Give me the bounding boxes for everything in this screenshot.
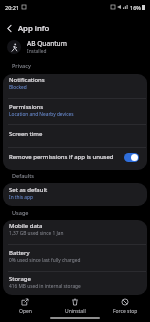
button[interactable]: Storage	[3, 272, 147, 295]
staticText: 16%	[130, 4, 141, 11]
staticText: AB Quantum	[27, 39, 67, 48]
staticText: Mobile data	[9, 222, 43, 230]
staticText: Remove permissions if app is unused	[9, 153, 114, 161]
staticText: 1,37 GB used since 1 Jan	[9, 230, 64, 237]
button[interactable]: Back	[2, 21, 16, 35]
button[interactable]: Set as default	[3, 183, 147, 206]
staticText: Battery	[9, 249, 30, 257]
staticText: Usage	[12, 209, 29, 216]
staticText: 416 MB used in internal storage	[9, 283, 81, 290]
staticText: App info	[18, 23, 50, 34]
staticText: Force stop	[113, 308, 138, 315]
staticText: Installed	[27, 48, 47, 55]
staticText: Screen time	[9, 130, 43, 138]
staticText: Storage	[9, 275, 31, 283]
staticText: 0% used since last fully charged	[9, 257, 81, 264]
staticText: Notifications	[9, 76, 45, 84]
staticText: Location and Nearby devices	[9, 111, 74, 118]
button[interactable]: Permissions	[3, 99, 147, 124]
button[interactable]: Mobile data	[3, 220, 147, 244]
button[interactable]: Notifications	[3, 74, 147, 98]
staticText: Privacy	[12, 62, 31, 69]
button[interactable]: Open	[0, 298, 50, 315]
staticText: Set as default	[9, 186, 48, 194]
button[interactable]: Force stop	[100, 298, 150, 315]
staticText: Defaults	[12, 172, 35, 179]
button[interactable]: Battery	[3, 245, 147, 271]
staticText: Permissions	[9, 103, 44, 111]
staticText: Blocked	[9, 84, 27, 91]
button[interactable]: Screen time	[3, 125, 147, 147]
staticText: 20:21	[5, 4, 20, 11]
button[interactable]: Uninstall	[50, 298, 100, 315]
button[interactable]: Toggle remove permissions	[124, 153, 139, 162]
staticText: Open	[19, 308, 32, 315]
staticText: In this app	[9, 194, 33, 201]
button[interactable]: Remove permissions if app is unused	[3, 148, 147, 170]
staticText: Uninstall	[65, 308, 86, 315]
